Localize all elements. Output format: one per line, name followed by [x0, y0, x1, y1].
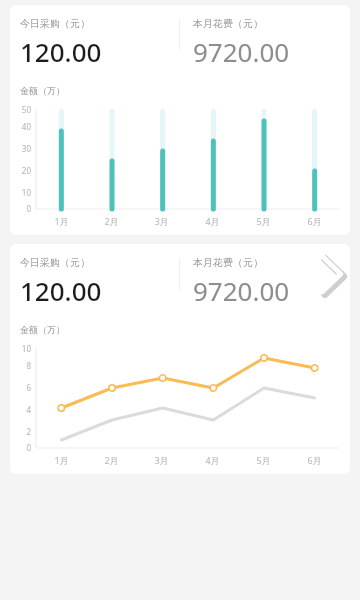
staticText: 1月: [54, 454, 69, 466]
staticText: 今日采购（元）: [20, 17, 90, 30]
staticText: 4月: [205, 454, 220, 466]
staticText: 2月: [104, 454, 119, 466]
staticText: 金额（万）: [20, 85, 65, 96]
staticText: 2: [26, 426, 31, 437]
staticText: 本月花费（元）: [193, 256, 263, 269]
button[interactable]: 今日采购（元）: [10, 5, 350, 235]
staticText: 2月: [104, 215, 119, 227]
button[interactable]: Next: [310, 248, 354, 300]
staticText: 8: [26, 360, 31, 371]
staticText: 10: [21, 187, 31, 198]
staticText: 120.00: [20, 34, 102, 69]
staticText: 本月花费（元）: [193, 17, 263, 30]
staticText: 50: [21, 104, 31, 115]
staticText: 9720.00: [193, 34, 290, 69]
staticText: 10: [21, 343, 31, 354]
staticText: 6月: [307, 454, 322, 466]
staticText: 9720.00: [193, 273, 290, 308]
staticText: 30: [21, 143, 31, 154]
staticText: 1月: [54, 215, 69, 227]
staticText: 今日采购（元）: [20, 256, 90, 269]
staticText: 5月: [256, 215, 271, 227]
button[interactable]: 今日采购（元）: [10, 244, 350, 474]
staticText: 4: [26, 404, 31, 415]
staticText: 120.00: [20, 273, 102, 308]
staticText: 0: [26, 203, 31, 214]
staticText: 4月: [205, 215, 220, 227]
staticText: 0: [26, 442, 31, 453]
staticText: 6: [26, 382, 31, 393]
staticText: 3月: [154, 215, 169, 227]
staticText: 3月: [154, 454, 169, 466]
staticText: 金额（万）: [20, 324, 65, 335]
staticText: 20: [21, 165, 31, 176]
staticText: 40: [21, 121, 31, 132]
staticText: 5月: [256, 454, 271, 466]
staticText: 6月: [307, 215, 322, 227]
